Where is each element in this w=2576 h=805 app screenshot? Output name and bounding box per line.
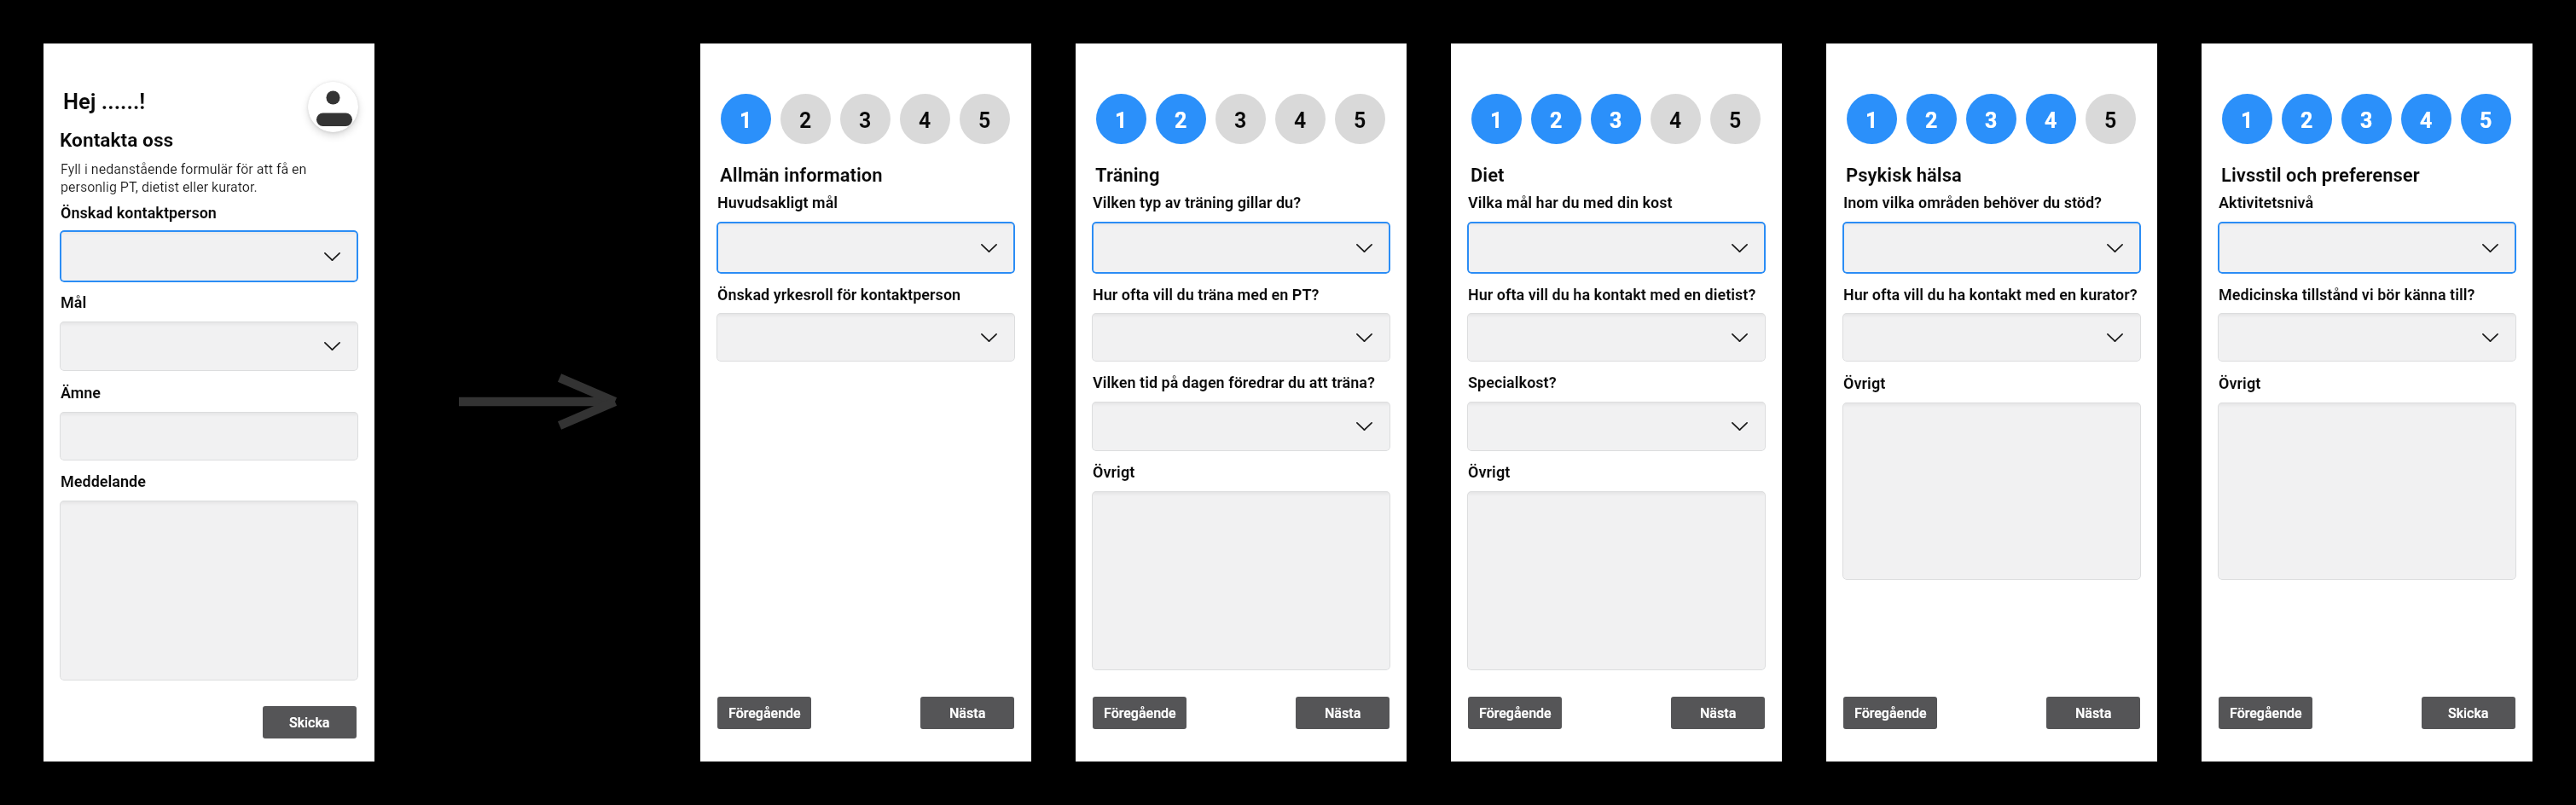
staticText: Skicka <box>289 715 330 731</box>
button[interactable]: 3 <box>1966 94 2016 144</box>
staticText: Nästa <box>2075 705 2112 721</box>
staticText: Vilken typ av träning gillar du? <box>1093 194 1302 211</box>
button[interactable]: 4 <box>2401 94 2451 144</box>
button[interactable]: 1 <box>1847 94 1897 144</box>
button[interactable] <box>1467 313 1766 362</box>
button[interactable] <box>1092 313 1390 362</box>
button[interactable] <box>60 321 358 371</box>
button[interactable]: 4 <box>900 94 950 144</box>
button[interactable]: Nästa <box>920 697 1014 729</box>
button[interactable]: 5 <box>2086 94 2136 144</box>
staticText: 4 <box>2420 108 2433 133</box>
staticText: 5 <box>2480 108 2492 133</box>
staticText: Föregående <box>1854 705 1927 721</box>
staticText: 2 <box>799 108 812 133</box>
button[interactable] <box>717 222 1015 274</box>
staticText: Önskad kontaktperson <box>61 204 217 222</box>
button[interactable]: 2 <box>780 94 831 144</box>
button[interactable]: Skicka <box>263 706 357 738</box>
staticText: Meddelande <box>61 472 146 490</box>
staticText: 3 <box>2360 108 2373 133</box>
staticText: Föregående <box>1104 705 1176 721</box>
button[interactable] <box>2218 222 2516 274</box>
button[interactable]: 2 <box>1156 94 1206 144</box>
button[interactable] <box>2218 313 2516 362</box>
button[interactable]: Föregående <box>717 697 811 729</box>
button[interactable]: 4 <box>2026 94 2076 144</box>
button[interactable]: Föregående <box>1468 697 1562 729</box>
staticText: 3 <box>1610 108 1622 133</box>
staticText: Hur ofta vill du ha kontakt med en kurat… <box>1843 286 2138 304</box>
button[interactable]: 5 <box>1335 94 1385 144</box>
button[interactable]: Föregående <box>2219 697 2312 729</box>
staticText: Hur ofta vill du träna med en PT? <box>1093 286 1320 304</box>
staticText: 2 <box>1550 108 1563 133</box>
button[interactable]: 5 <box>960 94 1010 144</box>
button[interactable] <box>60 412 358 460</box>
staticText: 4 <box>2045 108 2057 133</box>
button[interactable]: Nästa <box>1671 697 1765 729</box>
button[interactable]: 4 <box>1275 94 1326 144</box>
button[interactable]: 3 <box>840 94 891 144</box>
button[interactable]: Skicka <box>2422 697 2515 729</box>
staticText: Hej ......! <box>63 89 146 114</box>
staticText: Nästa <box>1700 705 1737 721</box>
staticText: Aktivitetsnivå <box>2219 194 2314 211</box>
staticText: 2 <box>1925 108 1938 133</box>
staticText: Övrigt <box>1093 463 1135 481</box>
staticText: Medicinska tillstånd vi bör känna till? <box>2219 286 2475 304</box>
staticText: 3 <box>1234 108 1247 133</box>
button[interactable]: Föregående <box>1843 697 1937 729</box>
button[interactable]: 4 <box>1651 94 1701 144</box>
button[interactable] <box>1842 313 2141 362</box>
staticText: Övrigt <box>1468 463 1511 481</box>
staticText: Huvudsakligt mål <box>717 194 838 211</box>
staticText: 3 <box>1985 108 1998 133</box>
button[interactable]: Nästa <box>2046 697 2140 729</box>
staticText: Träning <box>1095 165 1160 187</box>
button[interactable] <box>1092 402 1390 451</box>
staticText: Hur ofta vill du ha kontakt med en dieti… <box>1468 286 1756 304</box>
staticText: 2 <box>1175 108 1187 133</box>
button[interactable] <box>1092 222 1390 274</box>
staticText: Allmän information <box>720 165 883 187</box>
button[interactable]: Profil <box>308 82 358 132</box>
button[interactable]: 5 <box>2461 94 2511 144</box>
button[interactable]: 2 <box>1531 94 1581 144</box>
staticText: 1 <box>740 108 752 133</box>
staticText: 5 <box>2104 108 2117 133</box>
button[interactable]: 1 <box>2222 94 2272 144</box>
button[interactable] <box>1842 402 2141 580</box>
button[interactable]: 1 <box>1096 94 1146 144</box>
button[interactable]: 1 <box>1471 94 1522 144</box>
button[interactable]: 2 <box>2282 94 2332 144</box>
button[interactable]: 3 <box>1215 94 1266 144</box>
button[interactable] <box>1842 222 2141 274</box>
staticText: 1 <box>1490 108 1503 133</box>
button[interactable]: 1 <box>721 94 771 144</box>
staticText: Föregående <box>2230 705 2302 721</box>
staticText: Föregående <box>728 705 801 721</box>
staticText: Önskad yrkesroll för kontaktperson <box>717 286 961 304</box>
button[interactable] <box>1467 402 1766 451</box>
button[interactable]: 2 <box>1906 94 1957 144</box>
staticText: Mål <box>61 293 87 311</box>
button[interactable] <box>60 230 358 282</box>
staticText: Diet <box>1471 165 1505 187</box>
staticText: Nästa <box>1325 705 1361 721</box>
staticText: 2 <box>2300 108 2313 133</box>
button[interactable]: Föregående <box>1093 697 1186 729</box>
button[interactable]: 3 <box>1591 94 1641 144</box>
staticText: Inom vilka områden behöver du stöd? <box>1843 194 2103 211</box>
button[interactable]: 5 <box>1710 94 1761 144</box>
button[interactable]: 3 <box>2341 94 2392 144</box>
staticText: Vilka mål har du med din kost <box>1468 194 1673 211</box>
button[interactable] <box>717 313 1015 362</box>
button[interactable]: Nästa <box>1296 697 1390 729</box>
button[interactable] <box>1467 222 1766 274</box>
staticText: 1 <box>2241 108 2254 133</box>
